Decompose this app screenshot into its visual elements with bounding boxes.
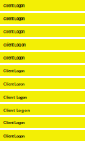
staticText: Client Logon bbox=[3, 16, 24, 21]
staticText: Client Logon bbox=[3, 120, 24, 125]
staticText: Client Logon bbox=[3, 94, 27, 100]
staticText: Client Logon bbox=[3, 133, 24, 138]
staticText: Client Logon bbox=[3, 107, 30, 113]
staticText: Client Logon bbox=[3, 81, 24, 86]
staticText: Client Logon bbox=[3, 68, 24, 73]
staticText: Client Logon bbox=[3, 29, 24, 34]
staticText: Client Logon bbox=[3, 55, 24, 60]
staticText: Client Logon bbox=[3, 42, 25, 47]
staticText: Client Logon bbox=[3, 3, 24, 8]
